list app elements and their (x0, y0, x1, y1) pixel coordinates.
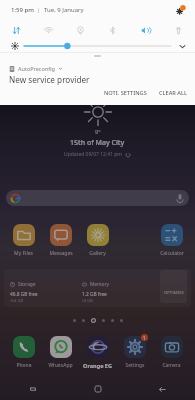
staticText: Calculator (160, 250, 184, 257)
staticText: Orange EG (83, 362, 112, 369)
button[interactable]: WhatsApp (42, 336, 79, 369)
button[interactable]: Recents (0, 378, 65, 400)
staticText: Gallery (89, 250, 106, 257)
button[interactable]: AutoPreconfig (0, 57, 195, 105)
button[interactable]: CLEAR ALL (157, 87, 189, 99)
staticText: Messages (49, 250, 73, 257)
staticText: 1.2 GB free (82, 291, 107, 298)
button[interactable]: Wi-Fi (32, 20, 64, 40)
button[interactable]: Location (64, 20, 96, 40)
staticText: 46.8 GB free (10, 291, 38, 298)
staticText: New service provider (9, 74, 90, 85)
staticText: /4 GB (82, 298, 93, 304)
staticText: 1:59 pm (11, 6, 34, 14)
button[interactable]: Bluetooth (96, 20, 129, 40)
button[interactable]: Messages (42, 224, 79, 257)
staticText: Tue, 9 January (44, 6, 84, 14)
button[interactable]: Home (65, 378, 130, 400)
button[interactable]: NOTI. SETTINGS (102, 87, 149, 99)
button[interactable]: Storage (4, 269, 191, 307)
staticText: NOTI. SETTINGS (104, 89, 147, 97)
staticText: Phone (16, 362, 32, 369)
staticText: 1 (143, 335, 146, 341)
button[interactable]: Expand (177, 41, 187, 51)
button[interactable]: Calculator (153, 224, 190, 257)
staticText: | (34, 6, 44, 14)
staticText: CLEAR ALL (159, 89, 187, 97)
staticText: My Files (14, 250, 33, 257)
button[interactable]: My Files (5, 224, 42, 257)
staticText: Memory (90, 281, 109, 288)
button[interactable]: Phone (5, 336, 42, 369)
button[interactable]: OPTIMIZE (160, 270, 187, 303)
button[interactable]: Search (6, 190, 189, 206)
staticText: Storage (18, 281, 36, 288)
button[interactable]: Mobile data (0, 20, 32, 40)
staticText: OPTIMIZE (164, 290, 184, 296)
button[interactable]: Back (130, 378, 195, 400)
staticText: Settings (125, 362, 145, 369)
button[interactable]: Gallery (79, 224, 116, 257)
staticText: 15th of May City (70, 138, 125, 148)
staticText: Updated 09/07 12:41 pm (64, 151, 123, 158)
staticText: /64 GB (10, 298, 24, 304)
button[interactable]: Sound (129, 20, 162, 40)
staticText: 9° (95, 128, 101, 135)
button[interactable]: Flashlight (162, 20, 195, 40)
button[interactable]: Camera (153, 336, 190, 369)
staticText: WhatsApp (48, 362, 73, 369)
button[interactable]: 1 (116, 336, 153, 369)
staticText: Camera (162, 362, 181, 369)
button[interactable]: Orange EG (79, 336, 116, 369)
staticText: AutoPreconfig (18, 65, 55, 72)
button[interactable]: Settings (175, 5, 186, 16)
